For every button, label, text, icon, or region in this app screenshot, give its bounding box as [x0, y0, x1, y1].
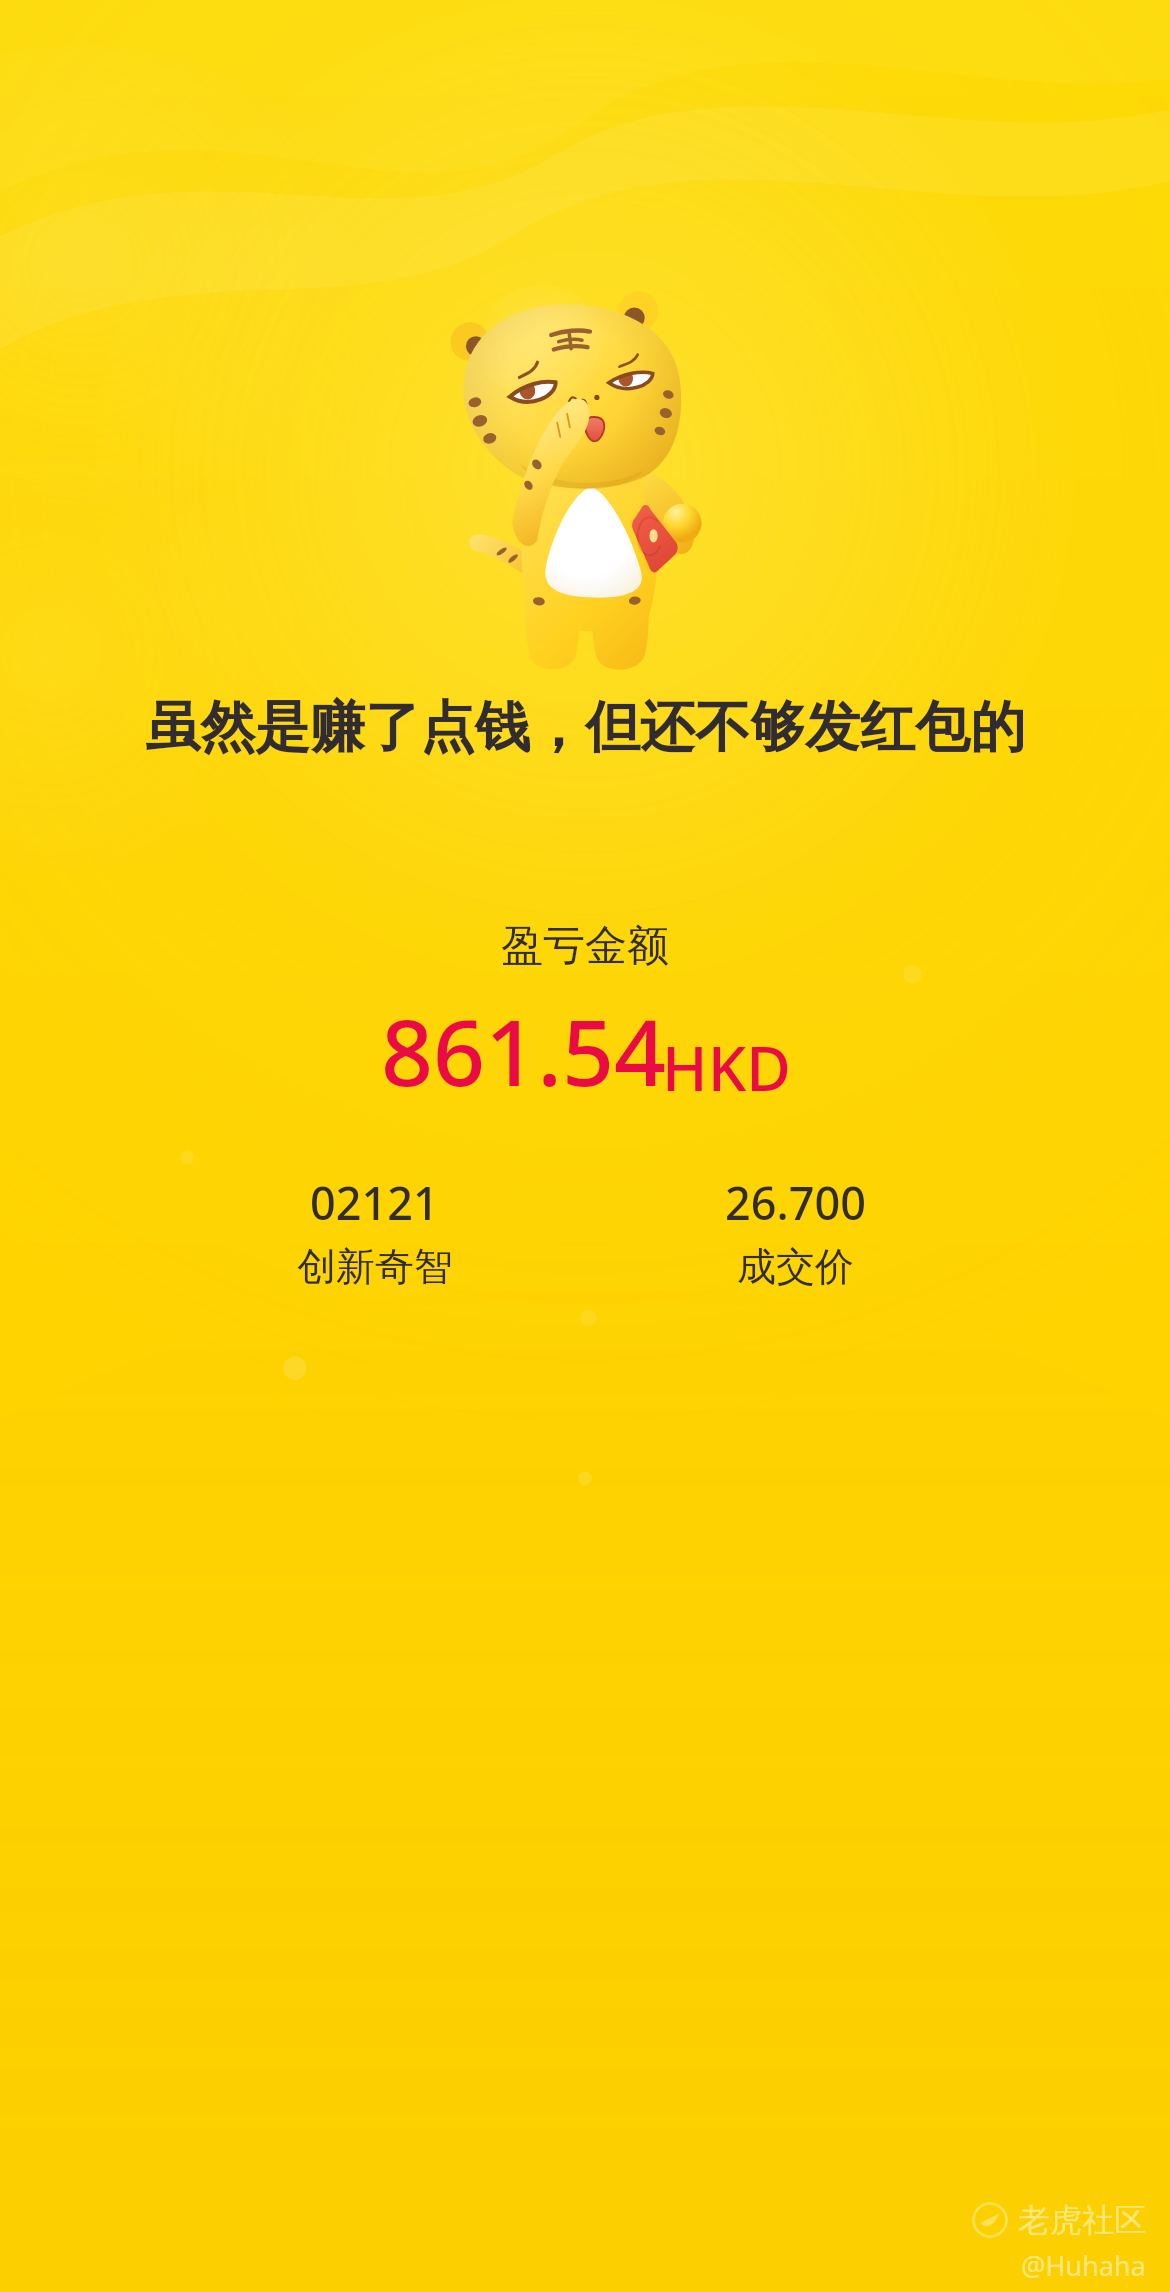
button[interactable]: 02121 [164, 1172, 585, 1291]
staticText: 26.700 [725, 1172, 866, 1233]
staticText: 02121 [310, 1172, 439, 1233]
staticText: 老虎社区 [1018, 2200, 1146, 2240]
staticText: 创新奇智 [297, 1242, 453, 1291]
staticText: 861.54 [381, 989, 667, 1113]
staticText: 成交价 [737, 1242, 854, 1291]
button[interactable]: Tiger community [972, 2200, 1170, 2292]
staticText: 盈亏金额 [501, 920, 669, 973]
staticText: HKD [662, 1026, 791, 1109]
staticText: @Huhaha [1021, 2247, 1146, 2284]
other: Tiger community [972, 2202, 1008, 2238]
button[interactable]: 26.700 [585, 1172, 1006, 1291]
staticText: 虽然是赚了点钱，但还不够发红包的 [145, 693, 1025, 762]
